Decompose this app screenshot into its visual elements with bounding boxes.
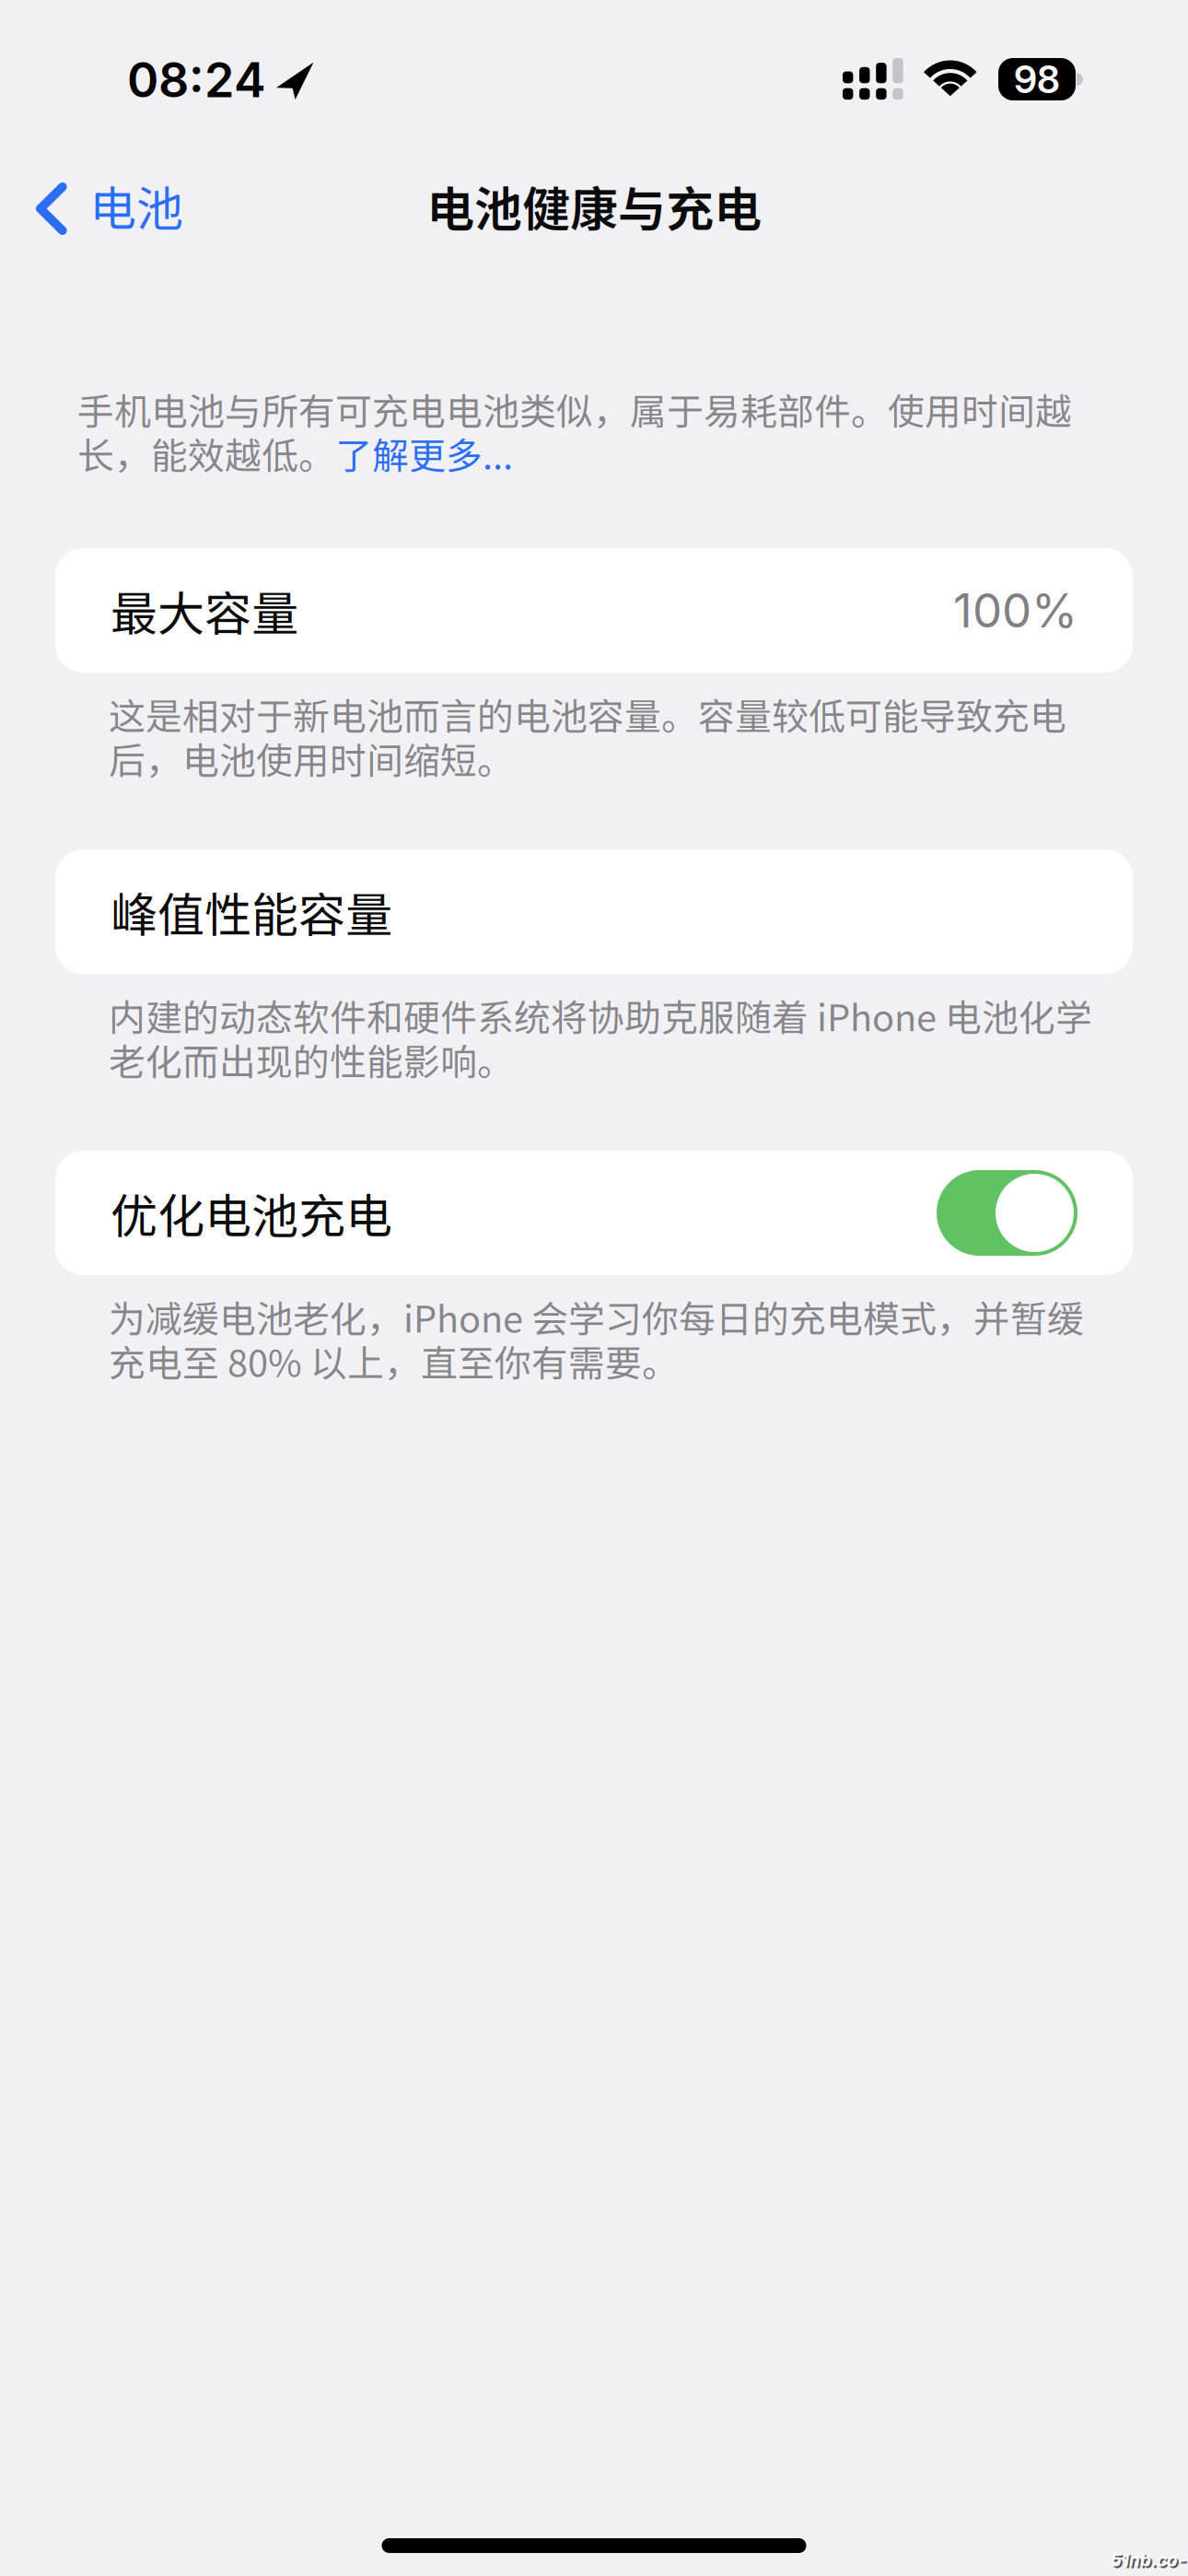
- button[interactable]: 峰值性能容量: [55, 849, 1133, 974]
- staticText: 51nb.com: [1111, 2549, 1186, 2576]
- staticText: 08:24: [127, 51, 266, 109]
- button[interactable]: 优化电池充电，已开启: [937, 1170, 1077, 1256]
- staticText: 长，能效越低。: [77, 427, 335, 480]
- staticText: 优化电池充电: [111, 1179, 392, 1247]
- button[interactable]: 最大容量: [55, 548, 1133, 673]
- staticText: 51nb.com: [1112, 2551, 1188, 2576]
- button[interactable]: 电池: [0, 120, 211, 267]
- staticText: 最大容量: [111, 576, 298, 644]
- staticText: 了解更多...: [335, 427, 513, 480]
- staticText: 100%: [953, 582, 1077, 639]
- staticText: 后，电池使用时间缩短。: [109, 732, 514, 785]
- staticText: 老化而出现的性能影响。: [109, 1033, 514, 1086]
- button[interactable]: 优化电池充电: [55, 1151, 1133, 1275]
- staticText: 98: [1014, 56, 1060, 102]
- staticText: 手机电池与所有可充电电池类似，属于易耗部件。使用时间越: [77, 382, 1072, 435]
- staticText: 峰值性能容量: [111, 878, 392, 946]
- button[interactable]: 了解更多...: [335, 427, 513, 480]
- staticText: 这是相对于新电池而言的电池容量。容量较低可能导致充电: [109, 687, 1066, 740]
- staticText: 电池健康与充电: [426, 171, 762, 241]
- staticText: 充电至 80% 以上，直至你有需要。: [109, 1334, 679, 1387]
- staticText: 内建的动态软件和硬件系统将协助克服随着 iPhone 电池化学: [109, 989, 1092, 1042]
- staticText: 电池: [89, 171, 183, 239]
- staticText: 为减缓电池老化，iPhone 会学习你每日的充电模式，并暂缓: [109, 1290, 1084, 1343]
